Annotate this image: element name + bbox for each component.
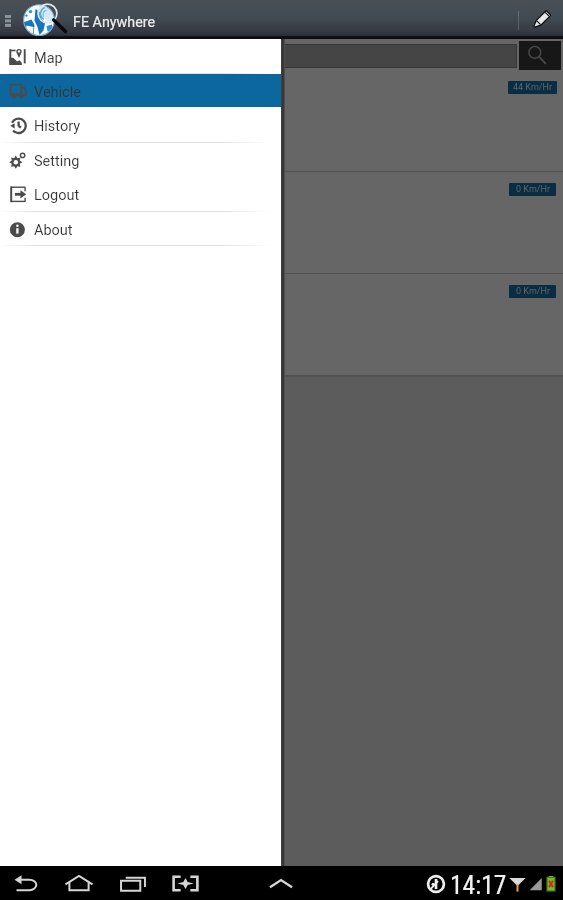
button[interactable] — [0, 274, 563, 376]
button[interactable]: Vehicle — [0, 74, 281, 107]
staticText: About — [34, 222, 73, 239]
button[interactable] — [0, 172, 563, 274]
button[interactable]: Search — [519, 41, 561, 70]
button[interactable]: FE Anywhere home — [22, 2, 66, 38]
button[interactable]: Edit — [524, 2, 560, 36]
button[interactable]: About — [0, 212, 281, 245]
button[interactable]: Show notifications — [258, 868, 303, 898]
button[interactable]: Logout — [0, 177, 281, 210]
staticText: Vehicle — [34, 84, 81, 101]
staticText: FE Anywhere — [73, 14, 156, 31]
button[interactable]: Recent apps — [110, 868, 155, 898]
button[interactable]: Home — [56, 868, 101, 898]
button[interactable]: Setting — [0, 143, 281, 176]
button[interactable]: Map — [0, 40, 281, 73]
staticText: 0 Km/Hr — [516, 286, 550, 297]
staticText: Setting — [34, 153, 80, 170]
button[interactable]: Back — [6, 868, 46, 898]
button[interactable]: Screenshot — [163, 868, 208, 898]
button[interactable] — [0, 70, 563, 172]
staticText: 14:17 — [450, 870, 507, 900]
staticText: 0 Km/Hr — [516, 184, 550, 195]
staticText: Logout — [34, 187, 80, 204]
staticText: History — [34, 118, 81, 135]
staticText: Map — [34, 50, 63, 67]
button[interactable]: History — [0, 108, 281, 141]
button[interactable]: More options — [0, 4, 16, 36]
staticText: 44 Km/Hr — [513, 82, 552, 93]
